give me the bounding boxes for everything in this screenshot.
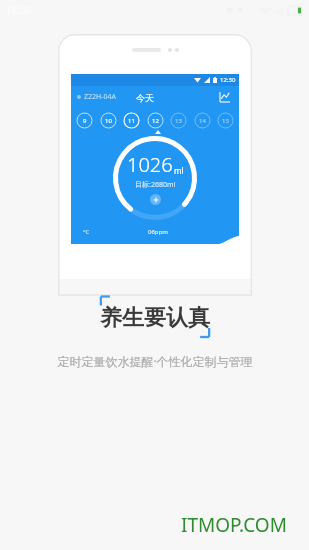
button[interactable]: Statistics chart [217,89,233,105]
staticText: 今天 [136,92,154,103]
button[interactable]: 14 [194,112,211,129]
staticText: ml [174,165,184,176]
staticText: 11 [128,117,135,125]
staticText: 目标:2680ml [135,180,176,190]
staticText: 定时定量饮水提醒·个性化定制与管理 [57,353,253,369]
button[interactable]: 10 [100,112,117,129]
button[interactable]: 11 [123,112,140,129]
button[interactable]: 9 [76,112,93,129]
staticText: 1026 [127,151,173,178]
staticText: 14 [199,117,206,125]
staticText: 13 [175,117,182,125]
staticText: °C [83,228,90,236]
button[interactable]: 12 [147,112,164,129]
staticText: 10 [105,117,112,125]
staticText: 06ppm [148,228,168,236]
staticText: ITMOP.COM [181,512,287,538]
staticText: 15 [222,117,229,125]
staticText: Z22H-04A [84,92,116,102]
button[interactable]: 13 [170,112,187,129]
staticText: 9 [83,117,87,125]
button[interactable]: Add water [150,194,161,205]
button[interactable]: 15 [217,112,234,129]
staticText: 12:30 [220,76,236,84]
staticText: 养生要认真 [100,304,210,332]
staticText: 12 [152,117,159,125]
